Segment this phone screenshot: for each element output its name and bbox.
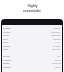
button[interactable]: Accent (3, 31, 61, 34)
button[interactable]: Labels (3, 45, 61, 48)
staticText: Grid (3, 41, 8, 44)
staticText: Labels (3, 45, 10, 48)
staticText: Backup (3, 66, 11, 69)
staticText: Highly (27, 4, 38, 8)
button[interactable]: Font (3, 38, 61, 41)
staticText: On (57, 55, 61, 58)
staticText: Swipe (3, 62, 10, 65)
staticText: Default (53, 38, 61, 41)
button[interactable]: Sound (3, 55, 61, 58)
button[interactable]: Swipe (3, 62, 61, 65)
staticText: Daily (55, 66, 61, 69)
staticText: Enabled (52, 62, 61, 65)
button[interactable]: Backup (3, 66, 61, 69)
staticText: Font (3, 38, 8, 41)
staticText: Haptics (3, 59, 12, 62)
button[interactable]: Icons (3, 34, 61, 37)
staticText: Sound (3, 55, 10, 58)
staticText: Light (55, 59, 61, 62)
staticText: Accent (3, 31, 11, 34)
staticText: Dock (3, 48, 9, 51)
button[interactable]: Haptics (3, 59, 61, 62)
button[interactable]: Dock (3, 48, 61, 51)
staticText: customizable (23, 9, 41, 13)
staticText: Shown (53, 45, 61, 48)
staticText: Icons (3, 34, 9, 37)
staticText: 4 x 5 (55, 41, 61, 44)
button[interactable]: Grid (3, 41, 61, 44)
staticText: Dynamic (51, 31, 61, 34)
staticText: Blurred (52, 48, 61, 51)
button[interactable]: Theme (3, 27, 61, 30)
staticText: System (53, 27, 61, 30)
staticText: Theme (3, 27, 11, 30)
staticText: Rounded (51, 34, 61, 37)
